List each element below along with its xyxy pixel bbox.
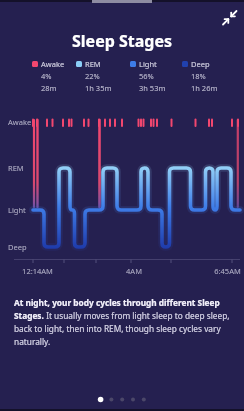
button[interactable] <box>220 8 240 28</box>
staticText: 1h 26m <box>191 83 218 93</box>
staticText: 3h 53m <box>139 83 166 93</box>
button[interactable]: Awake <box>32 59 56 93</box>
staticText: At night, your body cycles through diffe… <box>14 297 220 308</box>
button[interactable]: Deep <box>182 59 209 93</box>
button[interactable]: REM <box>76 59 103 93</box>
staticText: Awake <box>8 117 32 127</box>
staticText: 12:14AM <box>22 266 53 276</box>
staticText: Deep <box>8 242 27 252</box>
staticText: 4AM <box>126 266 142 276</box>
button[interactable]: Light <box>130 59 157 93</box>
staticText: 28m <box>41 83 57 93</box>
staticText: It usually moves from light sleep to dee… <box>44 310 230 321</box>
staticText: back to light, then into REM, though sle… <box>14 323 221 334</box>
staticText: REM <box>85 59 101 69</box>
staticText: Deep <box>191 59 210 69</box>
staticText: Sleep Stages <box>72 30 173 52</box>
staticText: 22% <box>85 71 100 81</box>
staticText: 56% <box>139 71 154 81</box>
staticText: Awake <box>41 59 65 69</box>
staticText: Light <box>139 59 157 69</box>
staticText: 6:45AM <box>214 266 241 276</box>
staticText: REM <box>8 163 24 173</box>
staticText: 4% <box>41 71 52 81</box>
staticText: naturally. <box>14 336 51 347</box>
staticText: Stages. <box>14 310 44 321</box>
staticText: 1h 35m <box>85 83 112 93</box>
staticText: Light <box>8 205 26 215</box>
staticText: 18% <box>191 71 206 81</box>
